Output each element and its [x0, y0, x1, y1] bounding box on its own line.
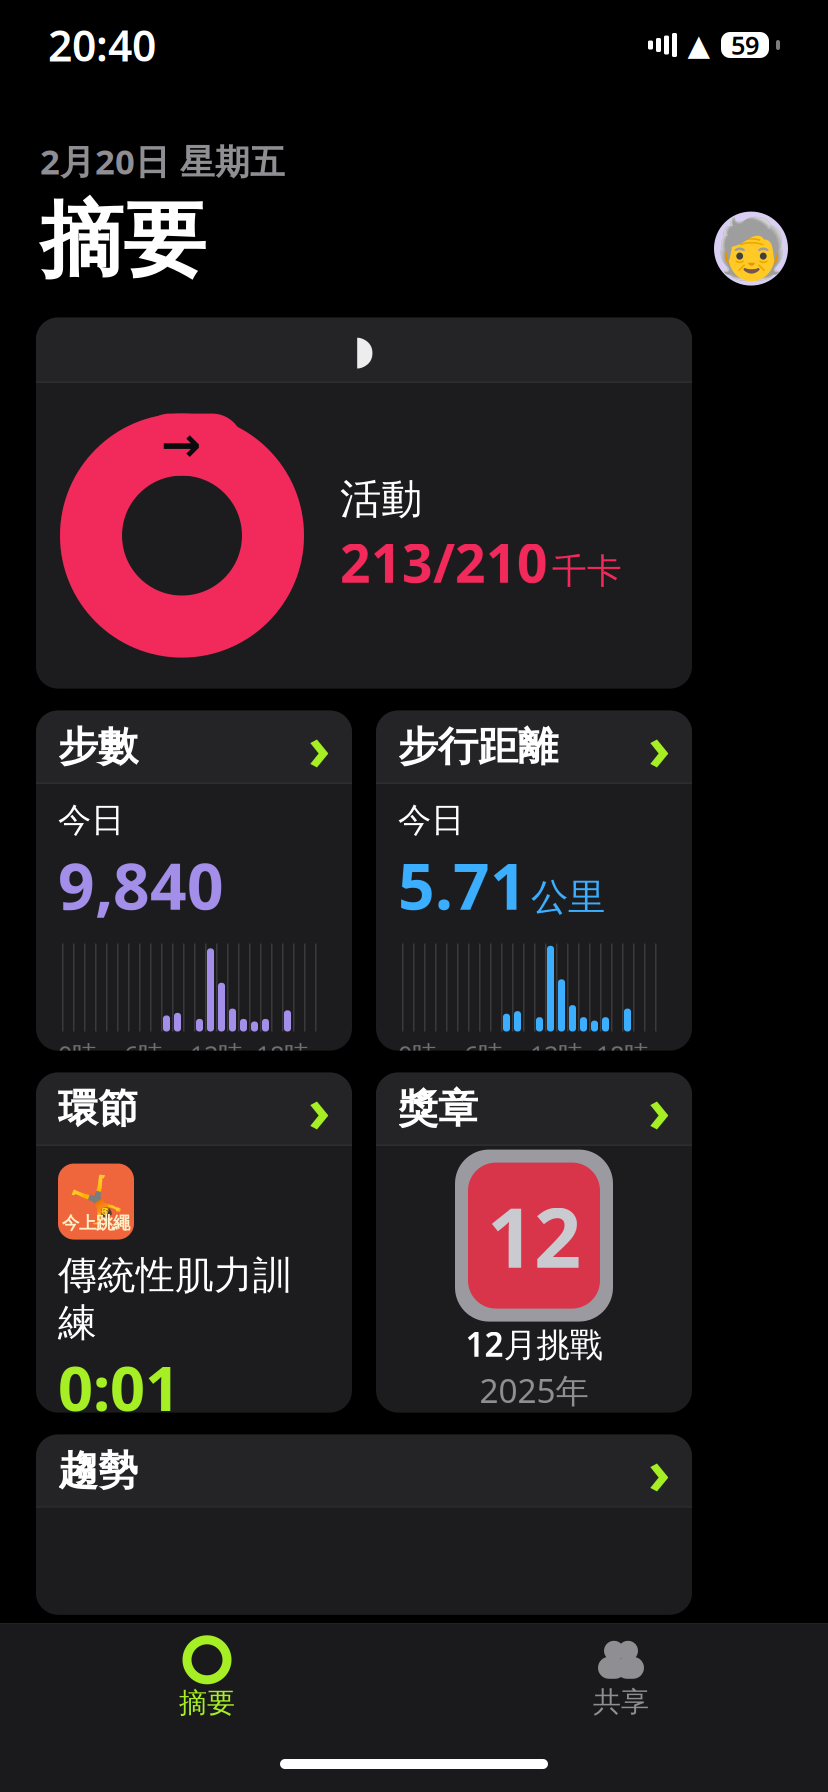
staticText: ▲: [687, 28, 710, 62]
staticText: 6時: [124, 1037, 163, 1071]
button[interactable]: 趨勢: [36, 1435, 692, 1615]
staticText: 今日: [58, 800, 124, 840]
staticText: 摘要: [179, 1686, 235, 1720]
staticText: 環節: [58, 1084, 138, 1133]
staticText: 活動: [340, 474, 422, 525]
staticText: 獎章: [398, 1084, 478, 1133]
staticText: 12: [487, 1181, 581, 1290]
button[interactable]: 環節: [36, 1073, 352, 1413]
staticText: ›: [648, 1068, 670, 1149]
staticText: 傳統性肌力訓練: [58, 1252, 292, 1347]
staticText: ◗: [353, 327, 374, 372]
staticText: 公里: [531, 874, 605, 920]
staticText: 213/210: [340, 526, 548, 597]
staticText: ›: [308, 706, 330, 787]
staticText: 千卡: [552, 550, 622, 592]
staticText: 12月挑戰: [465, 1322, 602, 1366]
staticText: 摘要: [40, 190, 206, 291]
button[interactable]: 步行距離: [376, 711, 692, 1051]
staticText: 18時: [596, 1037, 649, 1071]
button[interactable]: 摘要: [0, 1624, 414, 1736]
button[interactable]: 個人檔案: [714, 212, 788, 286]
staticText: 🧓: [714, 215, 787, 282]
button[interactable]: 步數: [36, 711, 352, 1051]
staticText: →: [161, 417, 201, 472]
staticText: ›: [308, 1068, 330, 1149]
staticText: 共享: [593, 1685, 649, 1719]
button[interactable]: ◗: [36, 318, 692, 689]
button[interactable]: 共享: [414, 1624, 828, 1736]
staticText: 59: [731, 28, 759, 62]
staticText: ›: [648, 706, 670, 787]
staticText: 0時: [398, 1037, 437, 1071]
staticText: 12時: [190, 1037, 243, 1071]
staticText: 6時: [464, 1037, 503, 1071]
button[interactable]: 獎章: [376, 1073, 692, 1413]
staticText: 0:01: [58, 1347, 180, 1428]
staticText: 12時: [530, 1037, 583, 1071]
staticText: 2025年: [479, 1368, 588, 1412]
staticText: 今上跳繩: [62, 1212, 130, 1234]
staticText: 18時: [256, 1037, 309, 1071]
staticText: 2月20日 星期五: [40, 138, 285, 184]
staticText: 步數: [58, 722, 138, 771]
staticText: 2024/5/22: [58, 1428, 224, 1474]
staticText: 20:40: [48, 17, 156, 73]
staticText: 5.71: [398, 842, 527, 927]
staticText: 今日: [398, 800, 464, 840]
staticText: 步行距離: [398, 722, 558, 771]
staticText: 🤸: [68, 1174, 124, 1225]
staticText: 9,840: [58, 842, 224, 927]
staticText: 0時: [58, 1037, 97, 1071]
staticText: 趨勢: [58, 1446, 138, 1495]
staticText: ›: [648, 1430, 670, 1511]
